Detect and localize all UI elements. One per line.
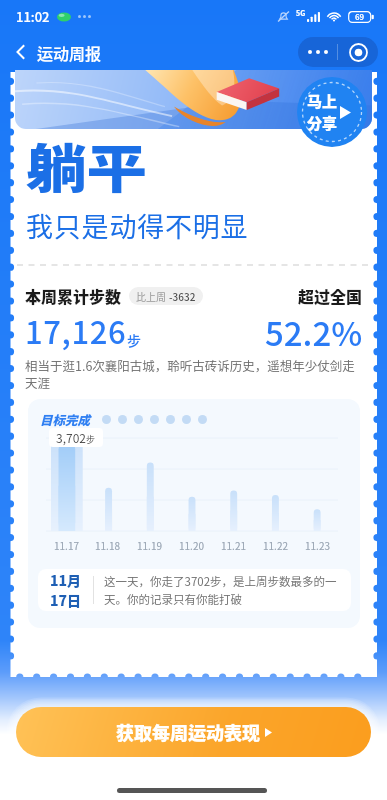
staticText: 11.19	[137, 538, 162, 552]
staticText: 分享	[307, 112, 338, 134]
staticText: 5G	[296, 8, 306, 18]
button[interactable]: 关闭	[338, 37, 378, 67]
staticText: 11.21	[221, 538, 246, 552]
staticText: 3,702	[56, 429, 86, 446]
staticText: 躺平	[26, 128, 147, 202]
staticText: -3632	[169, 289, 196, 303]
staticText: 本周累计步数	[25, 284, 122, 307]
staticText: 运动周报	[37, 41, 102, 64]
staticText: 52.2%	[265, 308, 363, 356]
button[interactable]: 返回	[3, 34, 39, 70]
staticText: 马上	[307, 90, 338, 112]
staticText: 11.23	[305, 538, 330, 552]
staticText: 比上周	[136, 289, 169, 303]
staticText: 获取每周运动表现	[116, 719, 260, 745]
staticText: 相当于逛1.6次襄阳古城，聆听古砖诉历史，遥想年少仗剑走天涯	[25, 356, 359, 391]
staticText: 11:02	[16, 7, 50, 26]
button[interactable]: 获取每周运动表现	[16, 707, 371, 757]
staticText: 步	[86, 433, 96, 446]
staticText: 17,126	[25, 308, 127, 353]
staticText: 这一天，你走了3702步，是上周步数最多的一天。你的记录只有你能打破	[104, 573, 341, 607]
staticText: 目标完成	[40, 410, 91, 428]
staticText: 我只是动得不明显	[26, 206, 249, 245]
button[interactable]: 更多	[298, 37, 337, 67]
staticText: 步	[127, 330, 141, 350]
staticText: 17日	[50, 590, 82, 610]
staticText: 69	[355, 11, 365, 23]
staticText: 11.18	[95, 538, 120, 552]
staticText: 11.22	[263, 538, 288, 552]
staticText: 11月	[50, 570, 82, 590]
staticText: 11.20	[179, 538, 204, 552]
staticText: 11.17	[54, 538, 79, 552]
staticText: 超过全国	[298, 284, 363, 307]
button[interactable]: 马上分享	[297, 77, 367, 147]
